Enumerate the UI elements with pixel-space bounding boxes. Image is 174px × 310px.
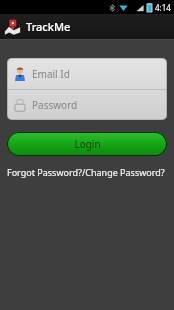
staticText: TrackMe: [26, 19, 71, 34]
staticText: Login: [74, 137, 101, 151]
button[interactable]: Login: [7, 132, 167, 156]
button[interactable]: Forgot Password?/Change Password?: [7, 166, 165, 178]
staticText: 4:14: [155, 2, 171, 13]
button[interactable]: Password: [7, 90, 167, 120]
button[interactable]: Email Id: [7, 58, 167, 89]
staticText: Email Id: [32, 67, 70, 81]
staticText: Password: [32, 98, 78, 112]
